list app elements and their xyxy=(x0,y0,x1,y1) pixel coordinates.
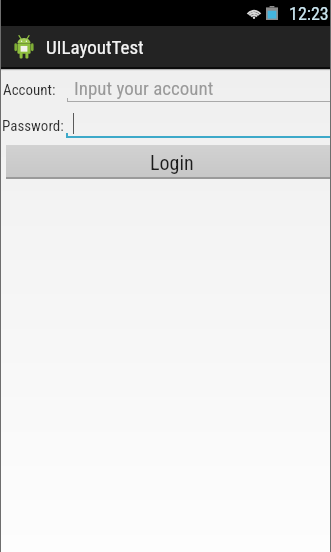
staticText: Password: xyxy=(2,117,64,135)
staticText: 12:23 xyxy=(289,3,329,24)
other: Battery xyxy=(266,6,278,20)
button[interactable]: Password: xyxy=(0,111,331,143)
button[interactable]: Account: xyxy=(0,75,331,107)
staticText: Login xyxy=(150,151,194,174)
staticText: Input your account xyxy=(74,77,214,99)
staticText: Account: xyxy=(3,81,56,99)
other: Wi-Fi xyxy=(246,7,262,19)
staticText: UILayoutTest xyxy=(46,36,144,58)
button[interactable]: Login xyxy=(6,145,331,179)
